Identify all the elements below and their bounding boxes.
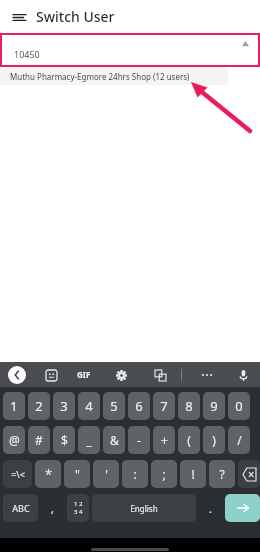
staticText: 1 — [10, 397, 18, 415]
staticText: ) — [212, 432, 216, 448]
staticText: 1 2 — [74, 500, 83, 508]
button[interactable]: More options — [198, 366, 216, 384]
button[interactable]: ABC — [3, 494, 38, 522]
staticText: 2 — [35, 397, 43, 415]
button[interactable]: . — [199, 494, 222, 522]
button[interactable]: + — [153, 426, 175, 454]
staticText: . — [209, 501, 212, 516]
button[interactable]: ! — [180, 460, 206, 488]
staticText: # — [35, 432, 43, 448]
staticText: 8 — [185, 397, 193, 415]
staticText: 7 — [160, 397, 168, 415]
button[interactable]: 7 — [153, 392, 175, 420]
staticText: 3 — [60, 397, 68, 415]
button[interactable]: 1 — [3, 392, 25, 420]
button[interactable]: ; — [151, 460, 177, 488]
button[interactable] — [238, 460, 260, 488]
button[interactable]: 9 — [203, 392, 225, 420]
button[interactable]: _ — [78, 426, 100, 454]
staticText: ABC — [12, 502, 30, 514]
button[interactable]: English — [92, 494, 196, 522]
staticText: ( — [187, 432, 191, 448]
button[interactable]: Muthu Pharmacy-Egmore 24hrs Shop (12 use… — [0, 67, 228, 85]
button[interactable]: 4 — [78, 392, 100, 420]
staticText: 0 — [235, 397, 243, 415]
button[interactable] — [225, 494, 260, 522]
button[interactable]: Translate — [151, 366, 169, 384]
staticText: $ — [61, 432, 68, 448]
staticText: 5 — [110, 397, 118, 415]
button[interactable]: ( — [178, 426, 200, 454]
button[interactable]: 1 2 — [67, 494, 89, 522]
staticText: 4 — [85, 397, 93, 415]
staticText: : — [133, 466, 137, 482]
button[interactable]: 6 — [128, 392, 150, 420]
staticText: + — [161, 432, 168, 448]
staticText: Switch User — [36, 7, 115, 26]
button[interactable]: Back — [8, 366, 26, 384]
staticText: / — [237, 432, 242, 448]
staticText: ! — [191, 466, 195, 482]
staticText: =\< — [11, 468, 25, 480]
staticText: , — [51, 501, 54, 516]
button[interactable]: ) — [203, 426, 225, 454]
button[interactable]: @ — [3, 426, 25, 454]
staticText: 9 — [210, 397, 218, 415]
button[interactable]: * — [35, 460, 61, 488]
button[interactable]: 2 — [28, 392, 50, 420]
staticText: 6 — [135, 397, 143, 415]
staticText: ; — [162, 466, 166, 482]
staticText: ? — [219, 466, 225, 482]
staticText: @ — [9, 432, 20, 448]
button[interactable]: 5 — [103, 392, 125, 420]
button[interactable]: ? — [209, 460, 235, 488]
staticText: Muthu Pharmacy-Egmore 24hrs Shop (12 use… — [10, 71, 190, 82]
button[interactable]: 0 — [228, 392, 250, 420]
button[interactable]: 3 — [53, 392, 75, 420]
button[interactable]: Voice input — [234, 366, 252, 384]
button[interactable]: Settings — [112, 366, 130, 384]
button[interactable]: Stickers — [42, 366, 60, 384]
staticText: 10450 — [14, 48, 40, 60]
button[interactable]: - — [128, 426, 150, 454]
staticText: * — [45, 466, 52, 482]
button[interactable]: / — [228, 426, 250, 454]
button[interactable]: , — [41, 494, 64, 522]
button[interactable]: : — [122, 460, 148, 488]
staticText: English — [130, 503, 158, 514]
button[interactable]: ' — [93, 460, 119, 488]
staticText: " — [75, 466, 80, 482]
staticText: GIF — [77, 369, 91, 380]
staticText: - — [137, 432, 141, 448]
button[interactable]: =\< — [3, 460, 32, 488]
button[interactable]: Collapse — [240, 39, 250, 49]
button[interactable]: GIF — [77, 369, 91, 380]
button[interactable]: Menu — [6, 4, 32, 30]
button[interactable]: 10450 — [2, 35, 258, 65]
staticText: ' — [105, 466, 108, 482]
button[interactable]: " — [64, 460, 90, 488]
button[interactable]: # — [28, 426, 50, 454]
button[interactable]: $ — [53, 426, 75, 454]
button[interactable]: & — [103, 426, 125, 454]
staticText: _ — [86, 432, 92, 448]
button[interactable]: 8 — [178, 392, 200, 420]
staticText: & — [110, 432, 119, 448]
staticText: 3 4 — [74, 508, 83, 516]
